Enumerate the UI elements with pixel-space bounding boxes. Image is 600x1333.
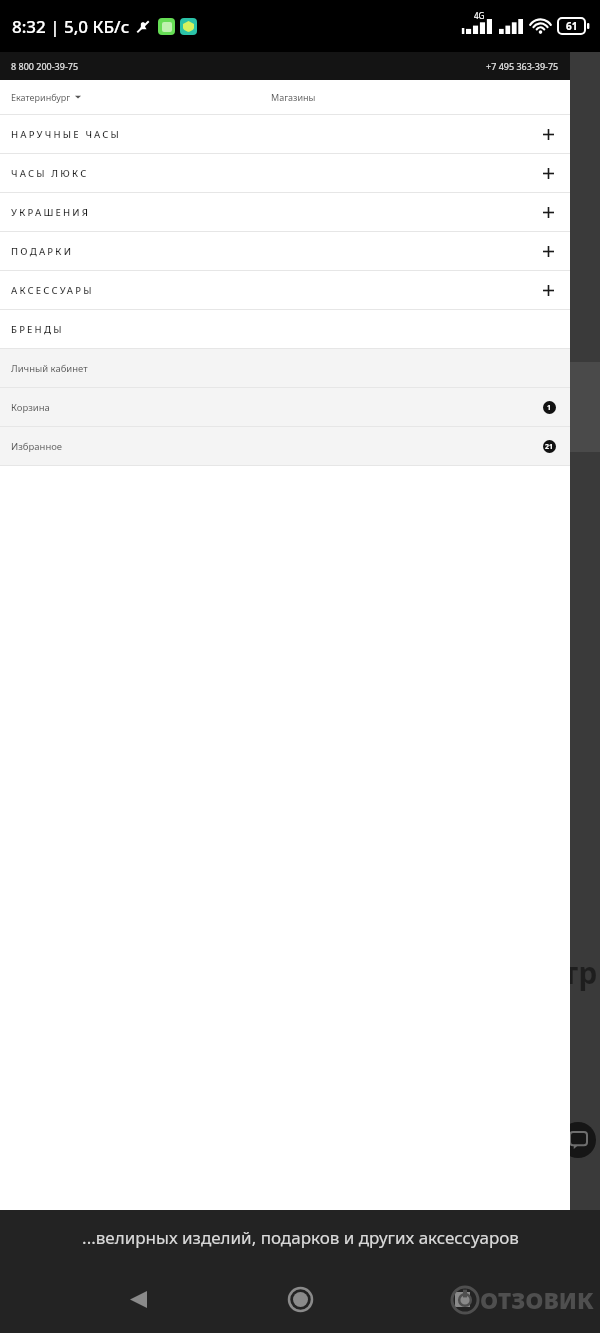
button[interactable]: Екатеринбург — [11, 91, 81, 103]
button[interactable]: БРЕНДЫ — [0, 310, 570, 348]
staticText: тр — [563, 952, 598, 993]
staticText: БРЕНДЫ — [11, 323, 64, 336]
staticText: 21 — [545, 442, 554, 452]
staticText: ЧАСЫ ЛЮКС — [11, 167, 89, 180]
staticText: НАРУЧНЫЕ ЧАСЫ — [11, 128, 122, 141]
staticText: Личный кабинет — [11, 362, 88, 375]
staticText: ПОДАРКИ — [11, 245, 74, 258]
staticText: 8 800 200-39-75 — [11, 60, 79, 72]
button[interactable]: Избранное — [0, 427, 570, 465]
staticText: УКРАШЕНИЯ — [11, 206, 91, 219]
button[interactable]: УКРАШЕНИЯ — [0, 193, 570, 231]
staticText: Корзина — [11, 401, 50, 414]
button[interactable]: ЧАСЫ ЛЮКС — [0, 154, 570, 192]
button[interactable]: Назад — [114, 1275, 162, 1323]
button[interactable]: НАРУЧНЫЕ ЧАСЫ — [0, 115, 570, 153]
staticText: 8:32 | 5,0 КБ/с — [12, 15, 130, 38]
staticText: 61 — [566, 19, 578, 33]
staticText: АКСЕССУАРЫ — [11, 284, 94, 297]
button[interactable]: Корзина — [0, 388, 570, 426]
button[interactable]: Домой — [276, 1275, 324, 1323]
staticText: ОТЗОВИК — [480, 1284, 594, 1315]
button[interactable]: Чат — [560, 1122, 596, 1158]
staticText: 1 — [547, 403, 552, 413]
staticText: +7 495 363-39-75 — [486, 60, 559, 72]
staticText: Екатеринбург — [11, 91, 71, 103]
button[interactable]: ПОДАРКИ — [0, 232, 570, 270]
staticText: ...велирных изделий, подарков и других а… — [82, 1226, 519, 1249]
button[interactable]: АКСЕССУАРЫ — [0, 271, 570, 309]
button[interactable]: Личный кабинет — [0, 349, 570, 387]
staticText: 4G — [474, 10, 485, 21]
button[interactable]: Обзор — [438, 1275, 486, 1323]
staticText: Избранное — [11, 440, 63, 453]
button[interactable]: Магазины — [271, 91, 316, 103]
